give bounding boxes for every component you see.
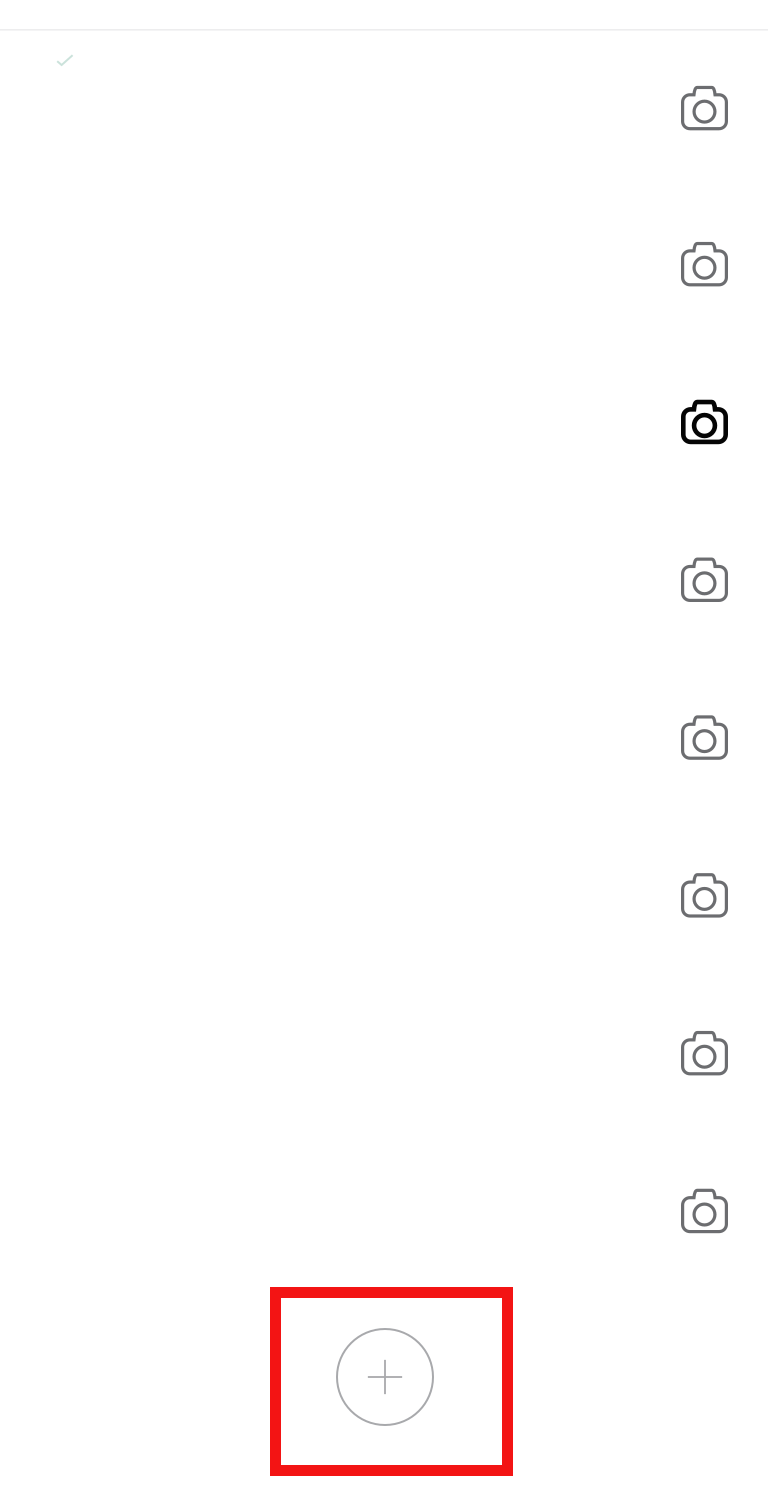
button[interactable]: Take photo: [0, 658, 768, 816]
button[interactable]: Take photo: [0, 31, 768, 185]
button[interactable]: Take photo: [0, 501, 768, 658]
button[interactable]: Take photo: [0, 816, 768, 974]
button[interactable]: Take photo: [0, 1132, 768, 1290]
button[interactable]: Take photo: [0, 185, 768, 343]
button[interactable]: Take photo: [0, 974, 768, 1132]
button[interactable]: Take photo: [0, 343, 768, 501]
button[interactable]: Add photo: [270, 1287, 513, 1476]
